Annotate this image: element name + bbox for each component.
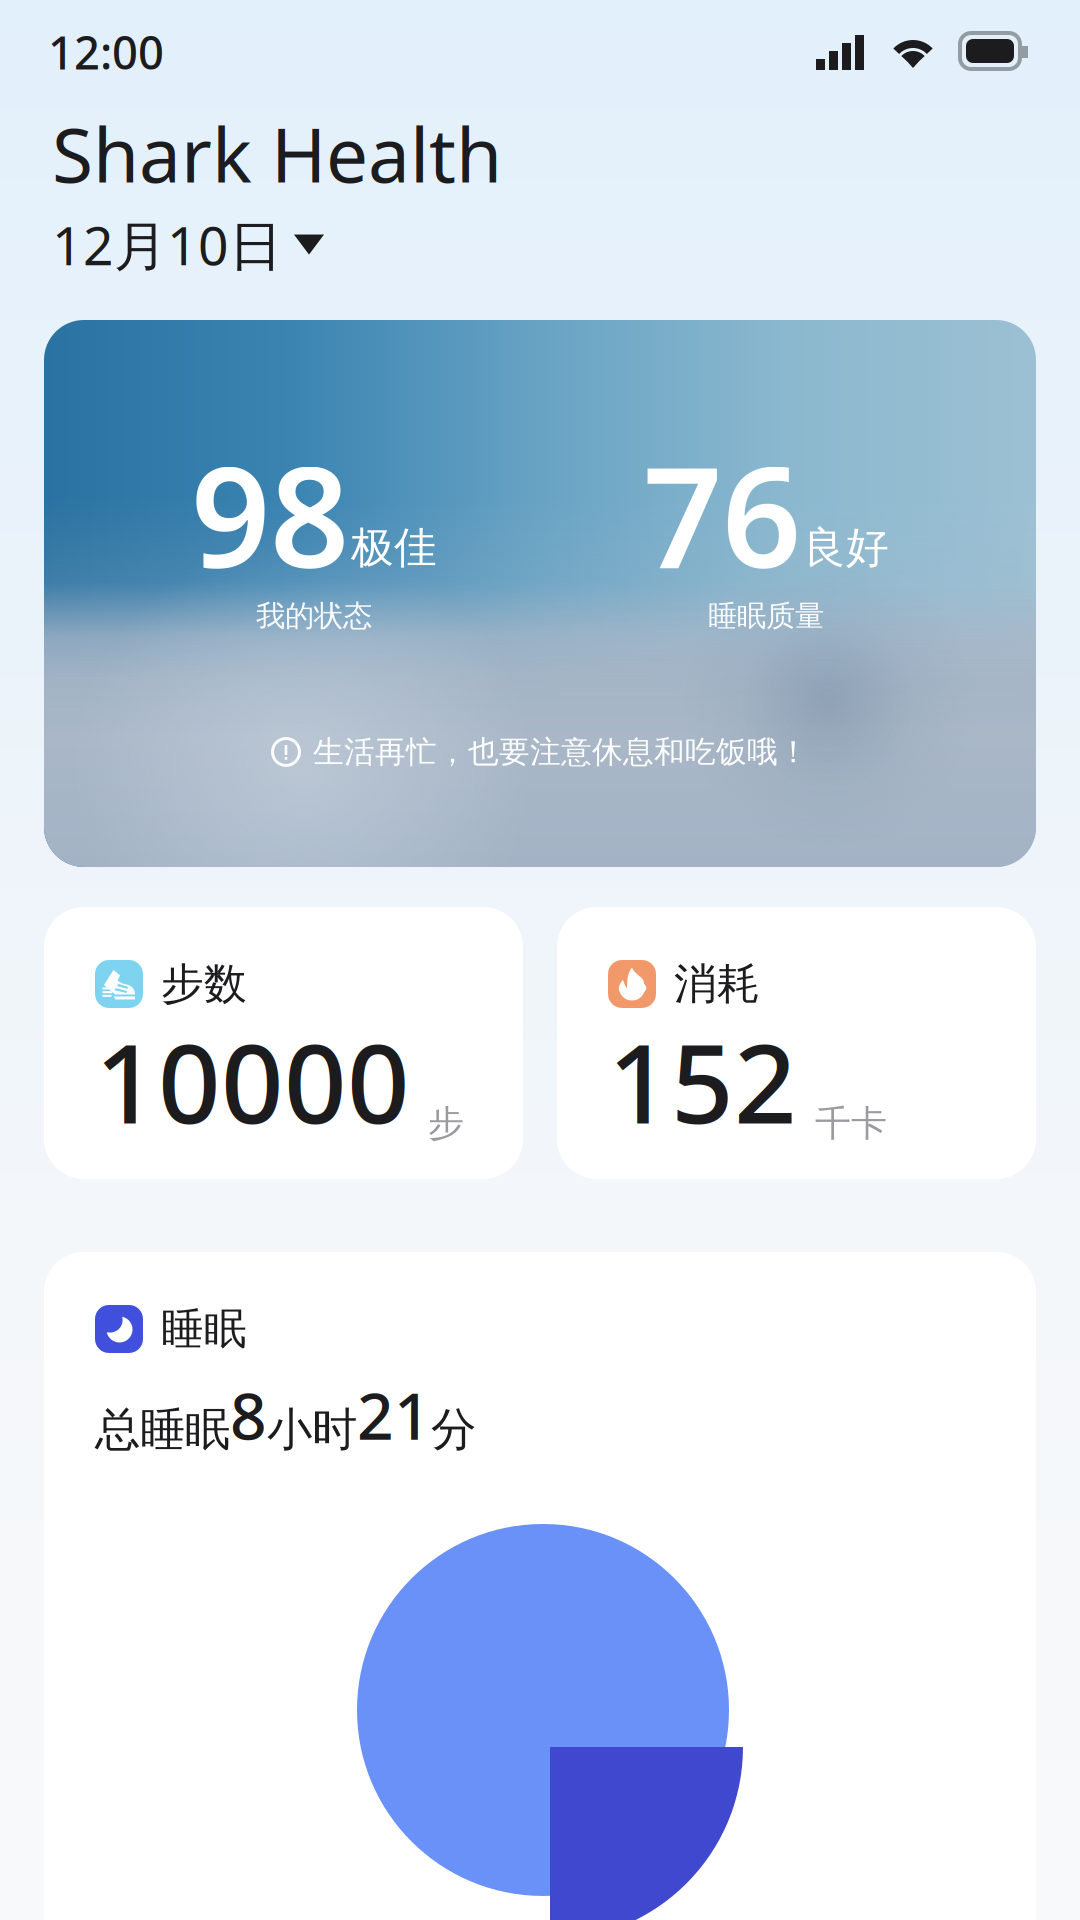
staticText: 良好 — [803, 522, 889, 574]
staticText: 小时 — [267, 1402, 357, 1457]
staticText: 12:00 — [48, 22, 164, 82]
staticText: 152 — [608, 1008, 797, 1154]
staticText: 98 — [191, 422, 349, 606]
staticText: 分 — [431, 1402, 476, 1457]
staticText: 我的状态 — [256, 598, 372, 634]
staticText: 总睡眠 — [95, 1402, 230, 1457]
staticText: 步 — [428, 1101, 464, 1146]
staticText: 12月10日 — [52, 209, 282, 280]
staticText: 生活再忙，也要注意休息和吃饭哦！ — [313, 733, 809, 771]
staticText: 睡眠质量 — [708, 598, 824, 634]
staticText: 消耗 — [674, 958, 760, 1010]
staticText: 10000 — [95, 1008, 410, 1154]
staticText: 8 — [230, 1372, 267, 1457]
staticText: 千卡 — [815, 1101, 887, 1146]
button[interactable]: 12月10日 — [0, 205, 324, 284]
button[interactable]: 步数 — [44, 907, 523, 1179]
staticText: 极佳 — [351, 522, 437, 574]
button[interactable]: 消耗 — [557, 907, 1036, 1179]
staticText: 睡眠 — [161, 1303, 247, 1355]
staticText: 76 — [643, 422, 801, 606]
staticText: 21 — [357, 1372, 431, 1457]
staticText: 步数 — [161, 958, 247, 1010]
staticText: Shark Health — [52, 104, 502, 203]
